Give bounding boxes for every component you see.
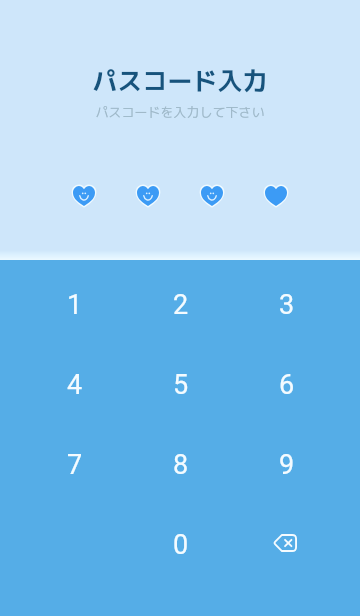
staticText: 1 (67, 289, 83, 321)
staticText: 9 (279, 449, 295, 481)
staticText: 5 (173, 369, 189, 401)
staticText: 6 (279, 369, 295, 401)
button[interactable]: 9 (236, 424, 336, 502)
button[interactable]: 6 (236, 344, 336, 422)
staticText: パスコード入力 (0, 63, 360, 98)
button[interactable]: 0 (130, 504, 230, 582)
button[interactable]: 8 (130, 424, 230, 502)
staticText: 2 (173, 289, 189, 321)
staticText: 0 (173, 529, 189, 561)
staticText: 7 (67, 449, 83, 481)
staticText: 8 (173, 449, 189, 481)
staticText: パスコードを入力して下さい (0, 103, 360, 121)
button[interactable]: 2 (130, 264, 230, 342)
button[interactable]: 1 (24, 264, 124, 342)
button[interactable]: 7 (24, 424, 124, 502)
button[interactable]: 3 (236, 264, 336, 342)
staticText: 4 (67, 369, 83, 401)
button[interactable]: 4 (24, 344, 124, 422)
staticText: 3 (279, 289, 295, 321)
button[interactable]: 5 (130, 344, 230, 422)
button[interactable]: Backspace (236, 504, 336, 582)
